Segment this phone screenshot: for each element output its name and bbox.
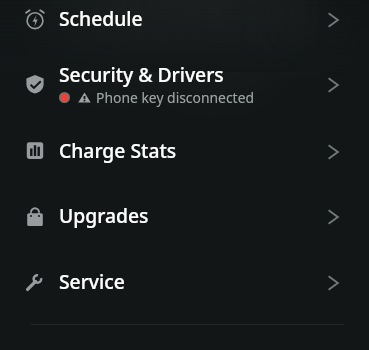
button[interactable]: Charge Stats [0,125,369,175]
button[interactable]: Service [0,256,369,306]
staticText: Charge Stats [59,137,177,163]
staticText: Security & Drivers [59,61,224,87]
button[interactable]: Security & Drivers [0,51,369,115]
staticText: Upgrades [59,202,149,228]
staticText: Service [59,268,125,294]
staticText: Schedule [59,5,143,31]
button[interactable]: Upgrades [0,190,369,240]
staticText: Phone key disconnected [96,88,255,107]
button[interactable]: Schedule [0,0,369,43]
